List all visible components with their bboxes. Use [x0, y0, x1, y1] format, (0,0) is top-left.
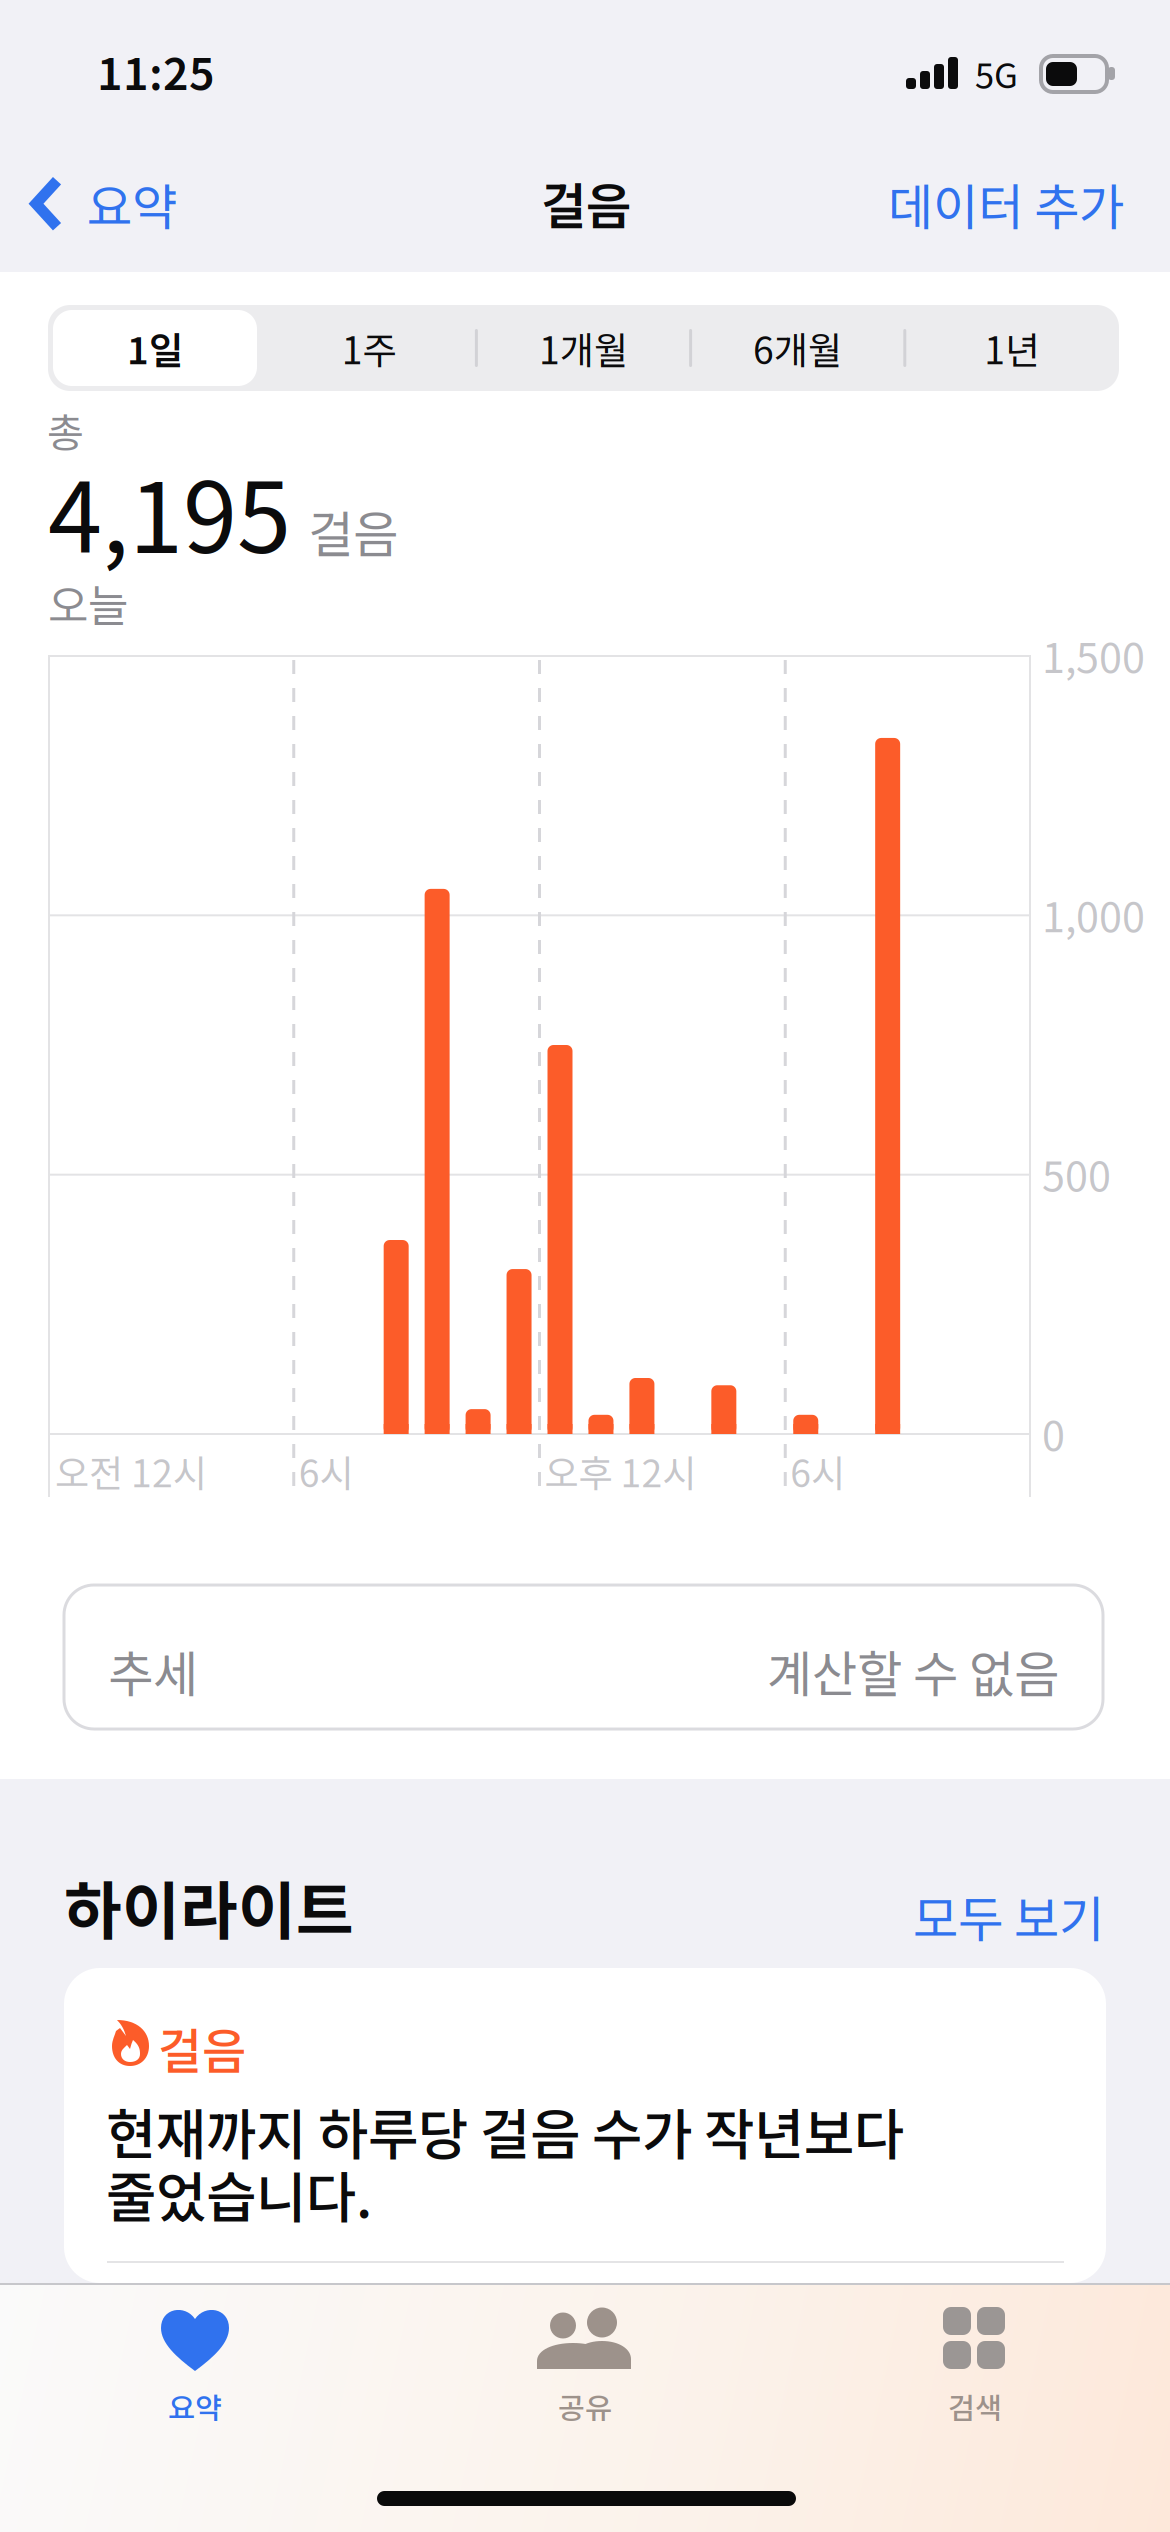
staticText: 1,000	[1042, 884, 1145, 944]
button[interactable]: 1년	[905, 305, 1119, 391]
staticText: 걸음	[158, 2013, 246, 2082]
button[interactable]: 걸음	[64, 1968, 1106, 2283]
button[interactable]: 6개월	[691, 305, 905, 391]
button[interactable]: 1일	[48, 305, 262, 391]
staticText: 공유	[558, 2385, 612, 2427]
staticText: 6시	[299, 1444, 354, 1498]
staticText: 추세	[108, 1635, 198, 1706]
staticText: 5G	[975, 48, 1018, 98]
staticText: 총	[47, 401, 84, 459]
staticText: 검색	[948, 2385, 1002, 2427]
staticText: 요약	[87, 168, 177, 239]
button[interactable]: 공유	[390, 2283, 780, 2443]
staticText: 4,195	[48, 440, 291, 581]
staticText: 1주	[342, 321, 397, 375]
staticText: 오전 12시	[55, 1444, 207, 1498]
staticText: 하이라이트	[64, 1861, 354, 1952]
staticText: 데이터 추가	[888, 168, 1124, 239]
staticText: 1년	[984, 321, 1039, 375]
staticText: 1,500	[1042, 625, 1145, 685]
button[interactable]: 모두 보기	[895, 1862, 1122, 1969]
staticText: 1일	[127, 321, 183, 375]
button[interactable]: 데이터 추가	[862, 146, 1150, 261]
staticText: 11:25	[97, 39, 215, 103]
staticText: 1개월	[539, 321, 628, 375]
staticText: 걸음	[541, 167, 631, 238]
staticText: 0	[1042, 1403, 1065, 1463]
staticText: 오후 12시	[544, 1444, 696, 1498]
staticText: 걸음	[308, 495, 398, 566]
staticText: 현재까지 하루당 걸음 수가 작년보다	[106, 2091, 904, 2170]
button[interactable]: 검색	[780, 2283, 1170, 2443]
button[interactable]: 요약	[0, 146, 203, 261]
staticText: 요약	[168, 2385, 222, 2427]
staticText: 오늘	[48, 571, 128, 635]
staticText: 줄었습니다.	[106, 2154, 372, 2233]
staticText: 계산할 수 없음	[767, 1635, 1059, 1706]
button[interactable]: 추세	[64, 1585, 1103, 1729]
staticText: 500	[1042, 1144, 1111, 1204]
staticText: 6개월	[753, 321, 842, 375]
staticText: 모두 보기	[913, 1880, 1104, 1951]
button[interactable]: 1개월	[476, 305, 690, 391]
button[interactable]: 1주	[262, 305, 476, 391]
button[interactable]: 요약	[0, 2283, 390, 2443]
staticText: 6시	[790, 1444, 845, 1498]
